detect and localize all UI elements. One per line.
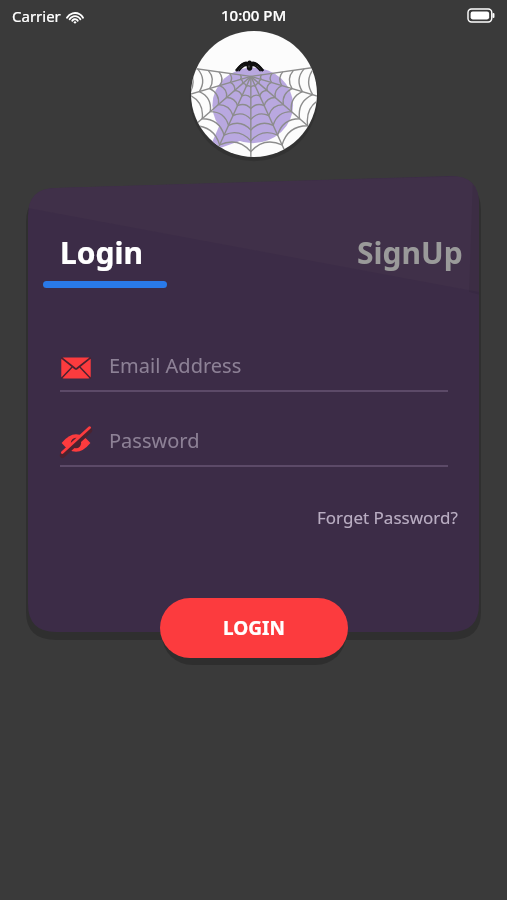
staticText: LOGIN	[223, 615, 285, 641]
staticText: Forget Password?	[317, 506, 458, 529]
staticText: Email Address	[109, 352, 242, 379]
button[interactable]: Forget Password?	[313, 502, 462, 533]
button[interactable]: Toggle password visibility	[60, 425, 448, 467]
button[interactable]: SignUp	[357, 232, 463, 273]
staticText: SignUp	[357, 232, 463, 273]
other: Email	[60, 355, 92, 381]
staticText: 10:00 PM	[221, 5, 287, 25]
staticText: Carrier	[12, 6, 61, 26]
staticText: Password	[109, 427, 200, 454]
button[interactable]: Login	[60, 232, 184, 288]
staticText: Login	[60, 232, 143, 273]
other: Toggle password visibility	[60, 430, 92, 456]
button[interactable]: LOGIN	[160, 598, 348, 658]
button[interactable]: Email	[60, 350, 448, 392]
